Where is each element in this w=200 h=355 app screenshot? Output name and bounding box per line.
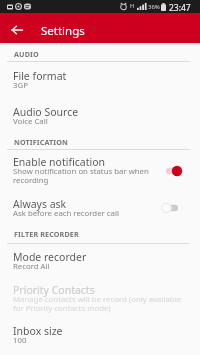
staticText: Voice Call [13,116,48,127]
staticText: Settings [41,23,85,39]
staticText: 36% [148,3,160,11]
staticText: Priority Contacts [13,283,95,297]
staticText: 100 [13,335,27,346]
button[interactable]: Priority Contacts [13,283,191,316]
staticText: Ask before each recorder call [13,208,119,219]
button[interactable]: Toggle on [160,160,192,182]
staticText: Audio Source [13,105,79,119]
staticText: Show notification on status bar when rec… [13,166,159,185]
button[interactable]: File format [13,69,188,94]
staticText: Mode recorder [13,250,87,264]
staticText: Inbox size [13,324,63,338]
button[interactable]: Inbox size [13,324,188,349]
staticText: Always ask [13,197,67,211]
staticText: 23:47 [169,2,191,14]
button[interactable]: Always ask [13,197,156,222]
staticText: H [130,2,135,10]
staticText: File format [13,69,67,83]
staticText: Enable notification [13,155,105,169]
button[interactable]: Mode recorder [13,250,188,275]
staticText: AUDIO [14,49,39,59]
button[interactable]: Enable notification [13,155,159,188]
staticText: Record All [13,261,50,272]
button[interactable]: Back [6,19,28,41]
button[interactable]: Audio Source [13,105,188,130]
staticText: 3GP [13,80,28,91]
staticText: FILTER RECORDER [14,229,79,239]
button[interactable]: Toggle off [160,197,192,219]
staticText: NOTIFICATION [14,137,68,147]
staticText: Manage contacts will be record (only ava… [13,294,191,313]
